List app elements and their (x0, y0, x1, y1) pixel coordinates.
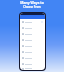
button[interactable] (20, 25, 45, 31)
button[interactable] (20, 55, 45, 61)
staticText: Many Ways to (20, 0, 44, 5)
button[interactable] (20, 61, 45, 67)
button[interactable] (20, 49, 45, 55)
staticText: Choose From (23, 5, 41, 9)
button[interactable] (20, 43, 45, 49)
button[interactable] (20, 37, 45, 43)
button[interactable] (20, 67, 45, 70)
button[interactable] (20, 31, 45, 37)
button[interactable] (20, 19, 45, 25)
